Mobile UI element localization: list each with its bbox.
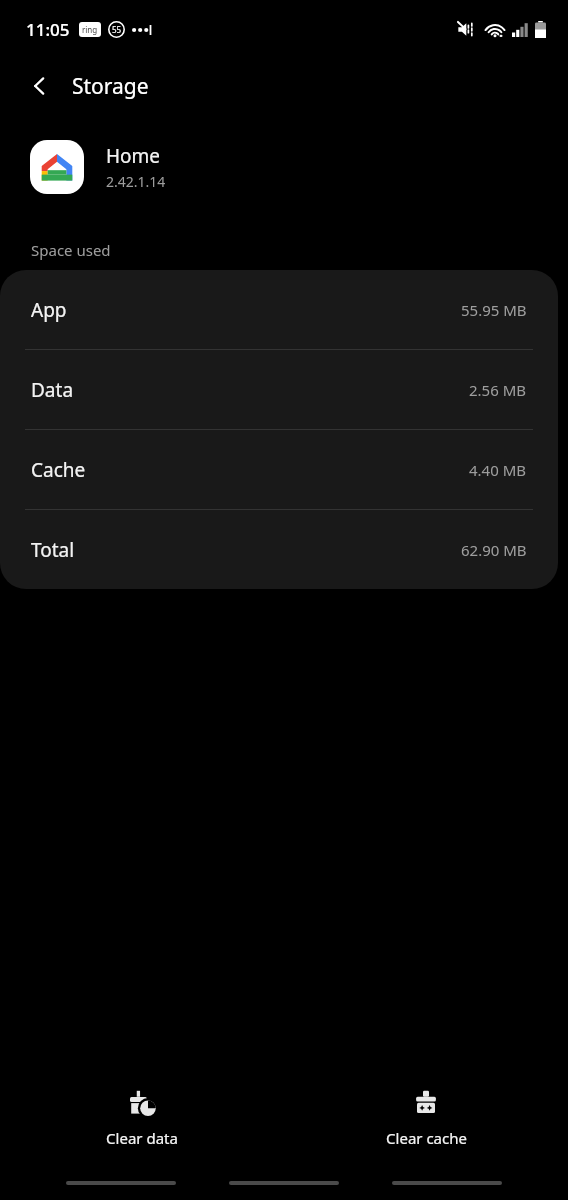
button[interactable]: Cache <box>0 430 558 509</box>
staticText: 2.56 MB <box>469 380 527 400</box>
button[interactable]: Clear cache <box>284 1083 568 1154</box>
staticText: Clear data <box>106 1128 178 1148</box>
staticText: Storage <box>72 72 149 101</box>
staticText: Clear cache <box>386 1128 467 1148</box>
staticText: 55.95 MB <box>461 300 527 320</box>
staticText: Cache <box>31 457 86 483</box>
button[interactable]: Back <box>16 62 64 110</box>
button[interactable]: App <box>0 270 558 349</box>
staticText: Total <box>31 537 75 563</box>
staticText: ring <box>82 24 98 35</box>
staticText: 55 <box>112 24 122 35</box>
staticText: 4.40 MB <box>469 460 527 480</box>
staticText: App <box>31 297 67 323</box>
staticText: Space used <box>31 240 111 260</box>
staticText: Home <box>106 143 161 169</box>
staticText: 62.90 MB <box>461 540 527 560</box>
button[interactable]: Data <box>0 350 558 429</box>
staticText: 2.42.1.14 <box>106 172 166 191</box>
button[interactable]: Clear data <box>0 1083 284 1154</box>
staticText: 11:05 <box>26 18 70 41</box>
button[interactable]: Total <box>0 510 558 589</box>
staticText: Data <box>31 377 74 403</box>
